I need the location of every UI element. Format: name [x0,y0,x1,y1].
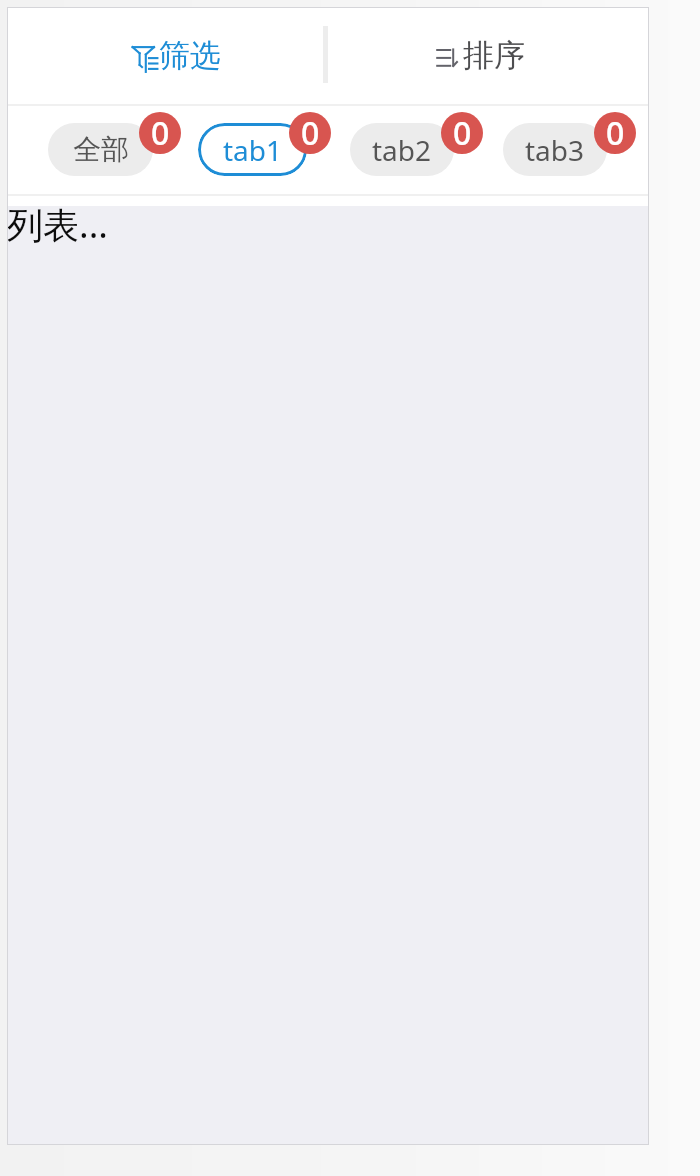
staticText: tab1 [223,131,283,169]
staticText: 0 [151,112,170,153]
staticText: tab2 [372,131,432,169]
staticText: tab3 [525,131,585,169]
button[interactable]: tab1 [198,106,339,194]
button[interactable]: tab3 [503,106,639,194]
button[interactable]: tab2 [350,106,486,194]
button[interactable]: 筛选 [17,7,335,104]
staticText: 全部 [73,132,129,167]
staticText: 0 [301,112,320,153]
staticText: 筛选 [159,36,221,75]
staticText: 0 [606,112,625,153]
staticText: 列表... [7,200,108,249]
button[interactable]: 全部 [48,106,185,194]
staticText: 排序 [463,36,525,75]
staticText: 0 [453,112,472,153]
button[interactable]: 排序 [321,7,641,104]
